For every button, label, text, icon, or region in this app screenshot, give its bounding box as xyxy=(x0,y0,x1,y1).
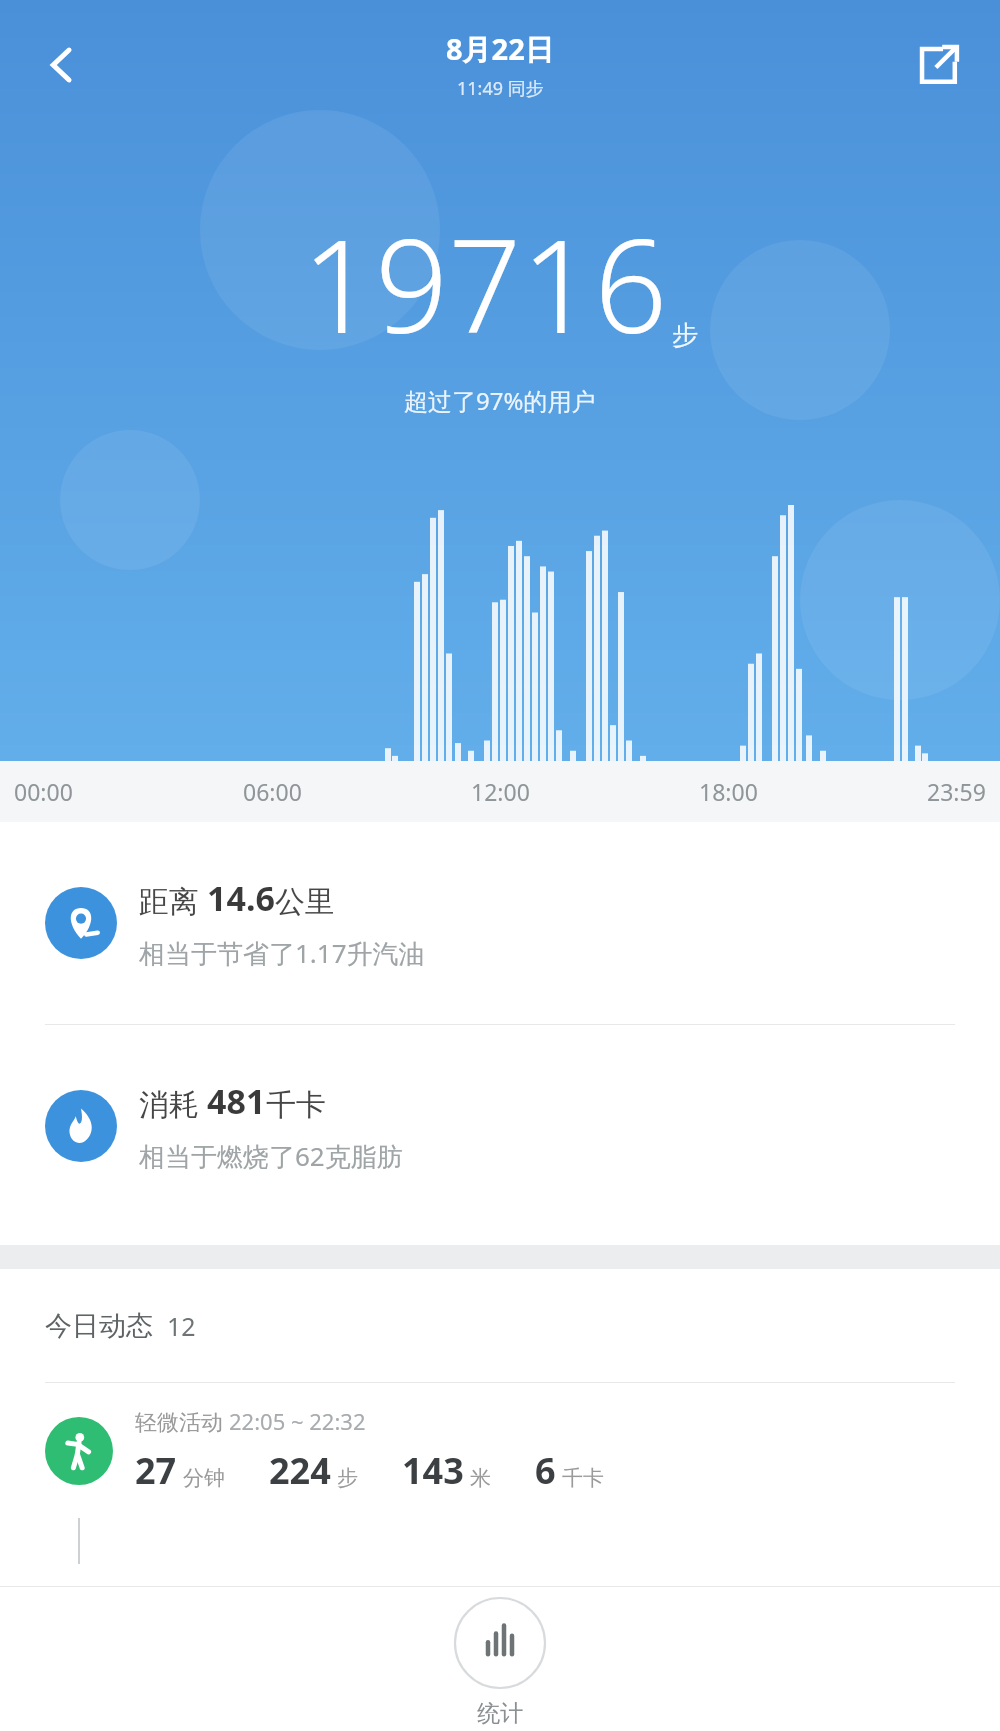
staticText: 6 xyxy=(535,1446,556,1495)
staticText: 消耗 xyxy=(139,1083,207,1124)
staticText: 公里 xyxy=(275,883,335,921)
staticText: 米 xyxy=(470,1465,491,1491)
staticText: 27 xyxy=(135,1446,177,1495)
button[interactable]: 消耗 xyxy=(0,1025,1000,1227)
staticText: 23:59 xyxy=(927,776,986,807)
staticText: 11:49 同步 xyxy=(457,76,544,101)
staticText: 06:00 xyxy=(243,776,302,807)
staticText: 18:00 xyxy=(699,776,758,807)
staticText: 22:05 ~ 22:32 xyxy=(229,1406,366,1436)
button[interactable]: Share xyxy=(898,25,978,105)
staticText: 481 xyxy=(207,1078,266,1124)
staticText: 12:00 xyxy=(471,776,530,807)
staticText: 相当于燃烧了62克脂肪 xyxy=(139,1138,403,1174)
staticText: 分钟 xyxy=(183,1465,225,1491)
staticText: 224 xyxy=(269,1446,331,1495)
staticText: 相当于节省了1.17升汽油 xyxy=(139,935,425,971)
staticText: 步 xyxy=(672,319,698,352)
staticText: 千卡 xyxy=(266,1086,326,1124)
staticText: 8月22日 xyxy=(446,29,554,69)
staticText: 14.6 xyxy=(207,875,275,921)
staticText: 19716 xyxy=(302,196,668,370)
staticText: 143 xyxy=(402,1446,464,1495)
staticText: 统计 xyxy=(477,1699,523,1728)
staticText: 步 xyxy=(337,1465,358,1491)
staticText: 千卡 xyxy=(562,1465,604,1491)
staticText: 00:00 xyxy=(14,776,73,807)
staticText: 距离 xyxy=(139,880,207,921)
staticText: 12 xyxy=(167,1309,196,1343)
button[interactable]: 距离 xyxy=(0,822,1000,1024)
staticText: 轻微活动 xyxy=(135,1406,229,1436)
button[interactable]: 轻微活动 xyxy=(0,1383,1000,1518)
button[interactable]: Back xyxy=(22,25,102,105)
staticText: 今日动态 xyxy=(45,1309,153,1343)
staticText: 超过了97%的用户 xyxy=(404,384,596,417)
button[interactable]: 统计 xyxy=(454,1587,546,1728)
